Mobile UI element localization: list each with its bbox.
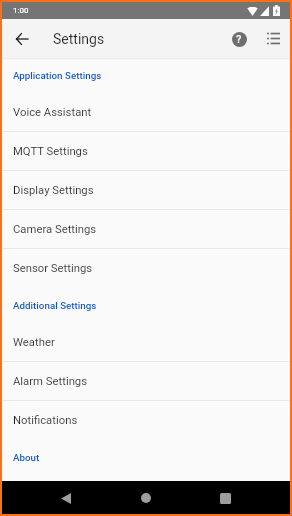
button[interactable]: Voice Assistant bbox=[2, 93, 290, 131]
staticText: Sensor Settings bbox=[13, 262, 93, 275]
button[interactable]: Help bbox=[222, 22, 256, 56]
staticText: 1:00 bbox=[13, 6, 29, 15]
staticText: Application Settings bbox=[13, 70, 102, 81]
staticText: About bbox=[13, 452, 40, 463]
staticText: Notifications bbox=[13, 414, 78, 427]
button[interactable]: Recent apps bbox=[213, 486, 237, 510]
staticText: ? bbox=[236, 33, 242, 46]
button[interactable]: Navigate up bbox=[2, 19, 41, 58]
button[interactable]: Additional Settings bbox=[2, 288, 290, 323]
staticText: Additional Settings bbox=[13, 300, 97, 311]
button[interactable]: Alarm Settings bbox=[2, 362, 290, 400]
staticText: MQTT Settings bbox=[13, 145, 88, 158]
staticText: Alarm Settings bbox=[13, 375, 88, 388]
button[interactable]: About bbox=[2, 440, 290, 475]
staticText: Camera Settings bbox=[13, 223, 97, 236]
button[interactable]: Weather bbox=[2, 323, 290, 361]
staticText: Weather bbox=[13, 336, 55, 349]
staticText: Voice Assistant bbox=[13, 106, 92, 119]
button[interactable]: Display Settings bbox=[2, 171, 290, 209]
button[interactable]: Sensor Settings bbox=[2, 249, 290, 288]
button[interactable]: View log bbox=[256, 22, 290, 56]
button[interactable]: Home bbox=[134, 486, 158, 510]
staticText: Settings bbox=[53, 31, 105, 47]
button[interactable]: Application Settings bbox=[2, 58, 290, 93]
button[interactable]: MQTT Settings bbox=[2, 132, 290, 170]
staticText: Display Settings bbox=[13, 184, 94, 197]
button[interactable]: Camera Settings bbox=[2, 210, 290, 248]
button[interactable]: Back bbox=[54, 486, 78, 510]
button[interactable]: Notifications bbox=[2, 401, 290, 440]
